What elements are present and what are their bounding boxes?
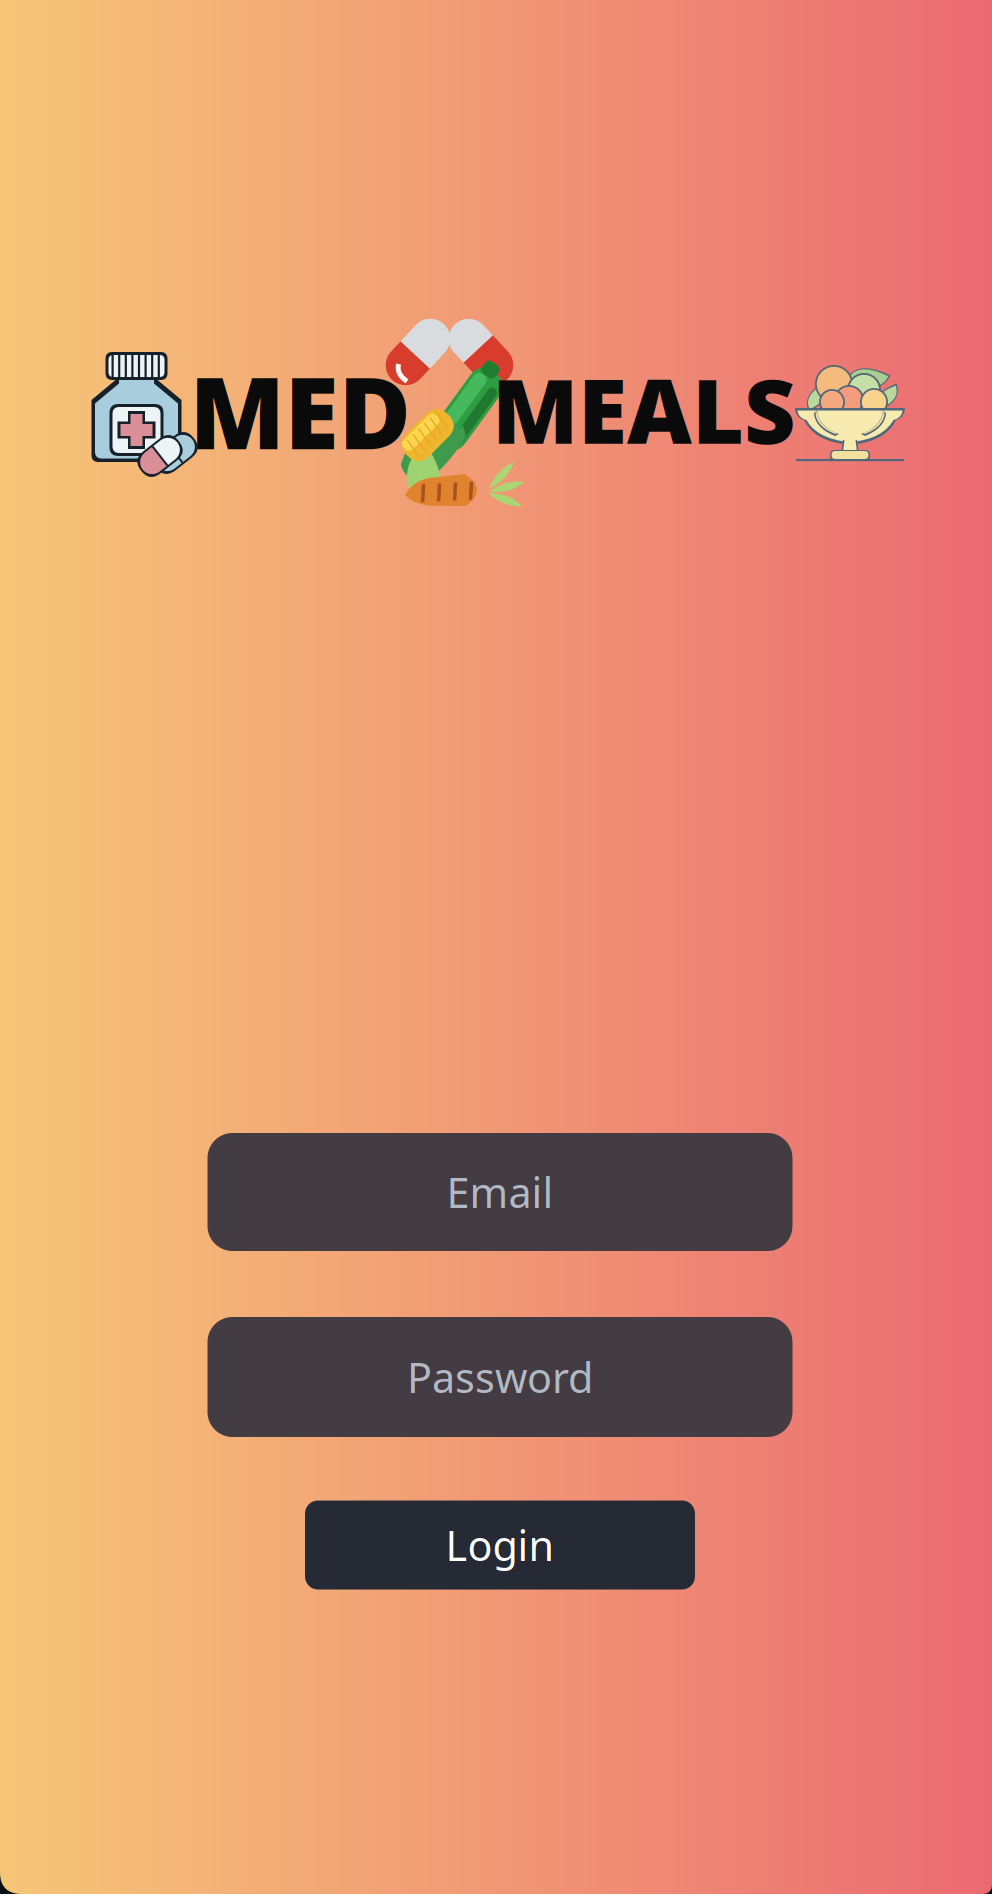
staticText: MEALS bbox=[492, 350, 796, 468]
staticText: Email bbox=[446, 1165, 553, 1219]
button[interactable]: Email bbox=[207, 1133, 792, 1251]
staticText: MED bbox=[189, 345, 410, 476]
staticText: Login bbox=[445, 1518, 554, 1572]
button[interactable]: Login bbox=[305, 1500, 695, 1589]
staticText: Password bbox=[407, 1350, 593, 1404]
button[interactable]: Password bbox=[207, 1317, 792, 1437]
